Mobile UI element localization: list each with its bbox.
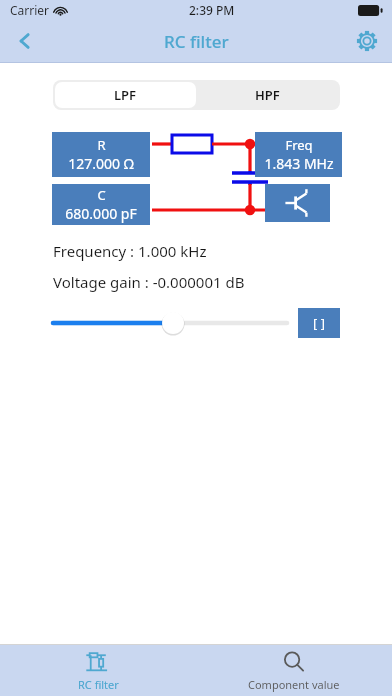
staticText: 2:39 PM xyxy=(189,2,235,18)
button[interactable]: Back xyxy=(0,20,50,62)
staticText: C xyxy=(97,186,106,204)
button[interactable]: C xyxy=(52,184,150,225)
staticText: Component value xyxy=(248,677,340,692)
staticText: [ ] xyxy=(313,314,325,332)
button[interactable]: Transistor xyxy=(265,184,330,222)
button[interactable]: [ ] xyxy=(298,308,340,338)
staticText: LPF xyxy=(114,86,137,104)
staticText: Carrier xyxy=(10,2,50,18)
staticText: 127.000 Ω xyxy=(68,154,134,173)
button[interactable]: LPF xyxy=(55,82,196,108)
button[interactable] xyxy=(53,308,287,338)
button[interactable]: HPF xyxy=(196,82,338,108)
staticText: RC filter xyxy=(164,30,229,53)
staticText: Freq xyxy=(285,136,313,154)
staticText: 1.843 MHz xyxy=(264,154,334,173)
button[interactable]: Component value xyxy=(196,645,392,696)
button[interactable]: Freq xyxy=(255,132,342,177)
staticText: 680.000 pF xyxy=(65,204,137,223)
staticText: RC filter xyxy=(78,677,119,692)
button[interactable]: RC filter xyxy=(0,645,196,696)
staticText: Frequency : 1.000 kHz xyxy=(53,241,207,261)
staticText: Voltage gain : -0.000001 dB xyxy=(53,272,245,292)
button[interactable]: R xyxy=(52,132,150,177)
button[interactable]: Settings xyxy=(342,20,392,62)
staticText: R xyxy=(97,136,106,154)
staticText: HPF xyxy=(255,86,280,104)
